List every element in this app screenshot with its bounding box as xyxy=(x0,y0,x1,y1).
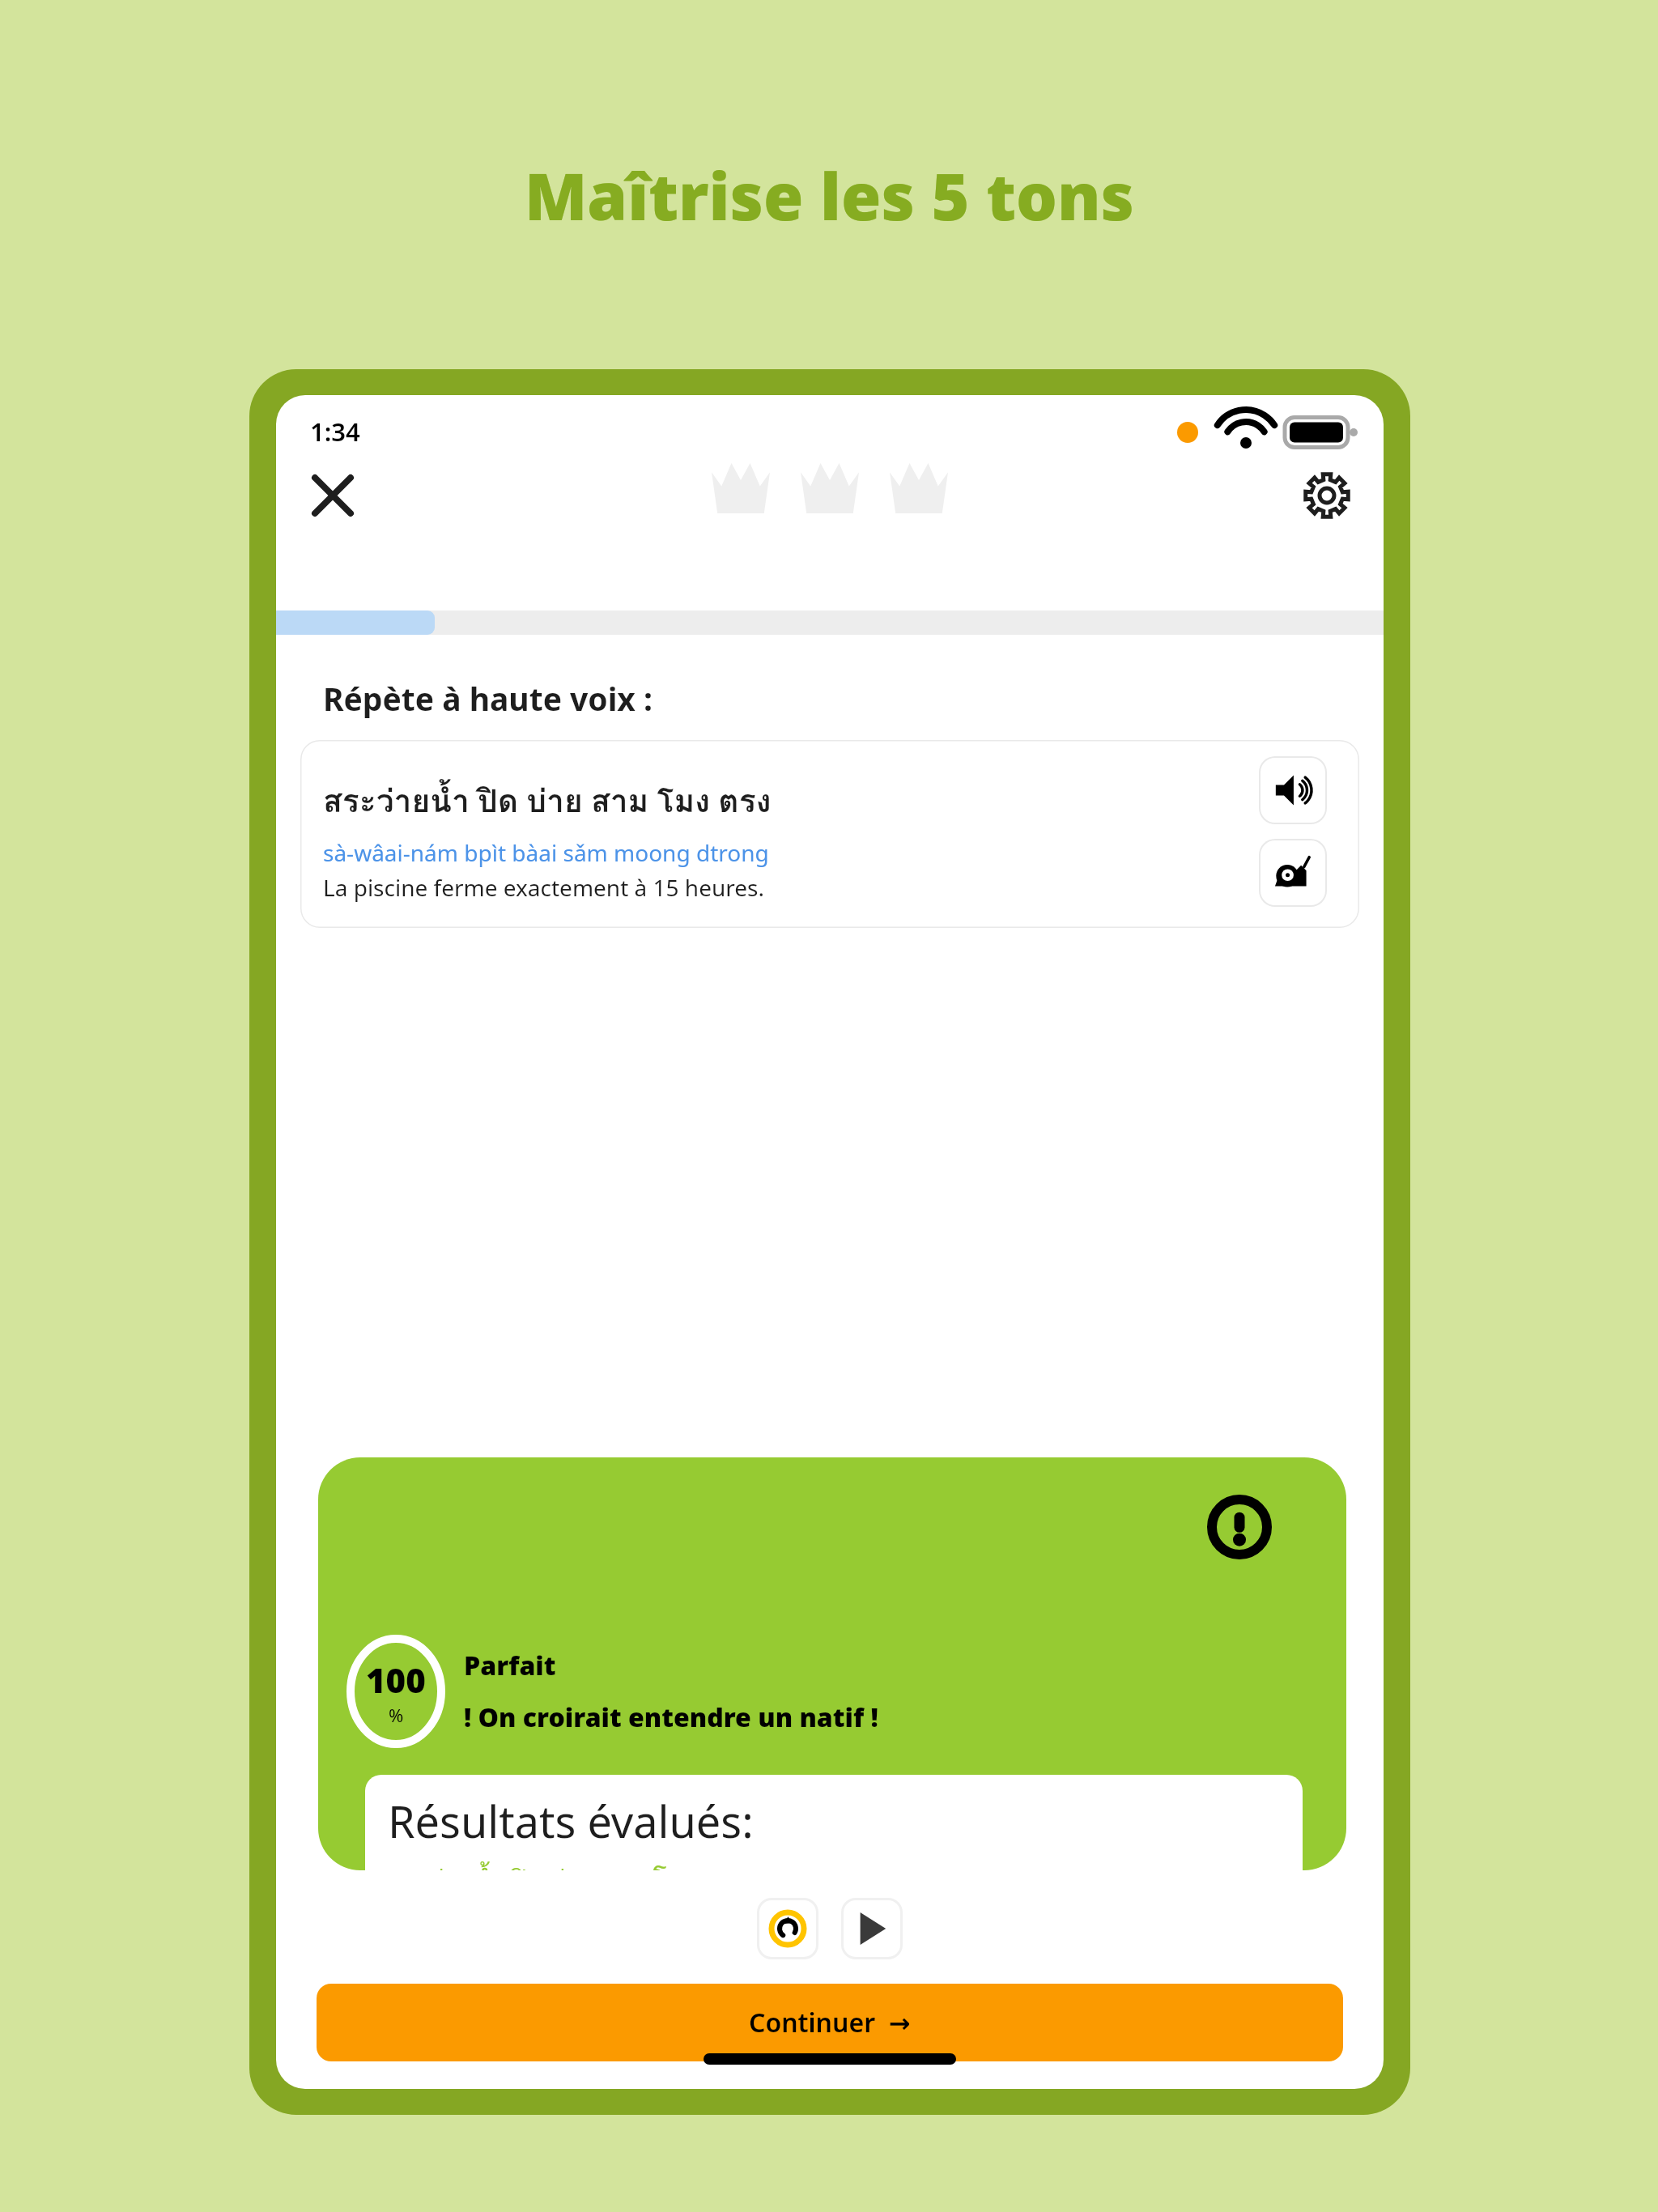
staticText: Répète à haute voix : xyxy=(323,677,653,720)
button[interactable]: Continuer → xyxy=(317,1984,1343,2061)
staticText: สระว่ายน้ำ ปิด บ่าย สาม โมง ตรง xyxy=(323,776,772,826)
staticText: Maîtrise les 5 tons xyxy=(525,151,1134,239)
button[interactable]: Résultats évalués: xyxy=(365,1775,1303,1870)
staticText: La piscine ferme exactement à 15 heures. xyxy=(323,872,764,903)
staticText: Résultats évalués: xyxy=(388,1791,754,1851)
button[interactable]: Play slowly xyxy=(1259,839,1327,907)
button[interactable]: Info xyxy=(1202,1490,1277,1564)
button[interactable]: Play recording xyxy=(841,1898,903,1959)
staticText: 100 xyxy=(366,1657,426,1703)
staticText: ! On croirait entendre un natif ! xyxy=(464,1699,878,1735)
staticText: Parfait xyxy=(464,1648,556,1683)
staticText: % xyxy=(389,1703,404,1727)
staticText: Continuer → xyxy=(749,2005,911,2040)
button[interactable]: Close xyxy=(292,455,373,536)
button[interactable]: Retry xyxy=(757,1898,818,1959)
button[interactable]: Play audio xyxy=(1259,756,1327,824)
button[interactable]: สระว่ายน้ำ ปิด บ่าย สาม โมง ตรง xyxy=(300,740,1359,928)
staticText: 1:34 xyxy=(310,415,360,449)
button[interactable]: Settings xyxy=(1286,455,1367,536)
staticText: sà-wâai-nám bpìt bàai sǎm moong dtrong xyxy=(323,837,769,868)
staticText: สระว่ายน้ำ ปิด บ่าย สาม โมง ตรง xyxy=(388,1859,745,1870)
